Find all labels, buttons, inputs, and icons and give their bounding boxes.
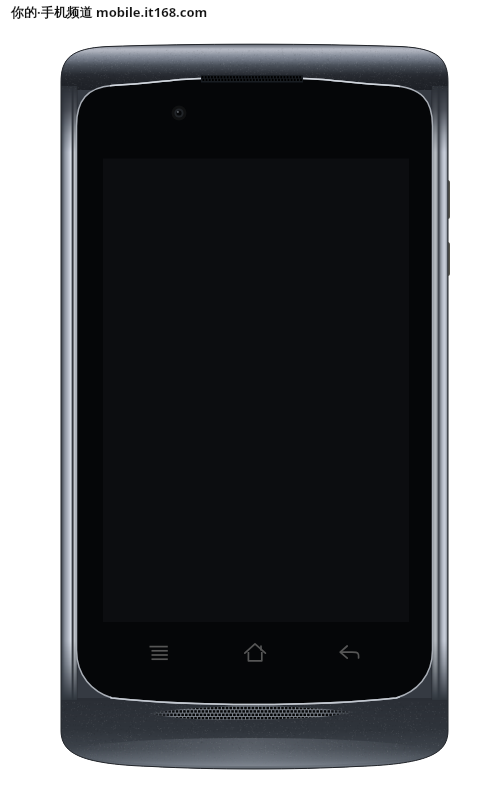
button[interactable]: Power bbox=[440, 240, 452, 280]
button[interactable]: Volume up bbox=[440, 178, 452, 222]
button[interactable]: Menu bbox=[110, 628, 210, 676]
button[interactable]: Home bbox=[210, 628, 300, 676]
staticText: 你的·手机频道 mobile.it168.com bbox=[11, 3, 208, 21]
button[interactable]: Back bbox=[305, 628, 395, 676]
button[interactable]: mobile.it168.com watermark bbox=[11, 3, 208, 21]
